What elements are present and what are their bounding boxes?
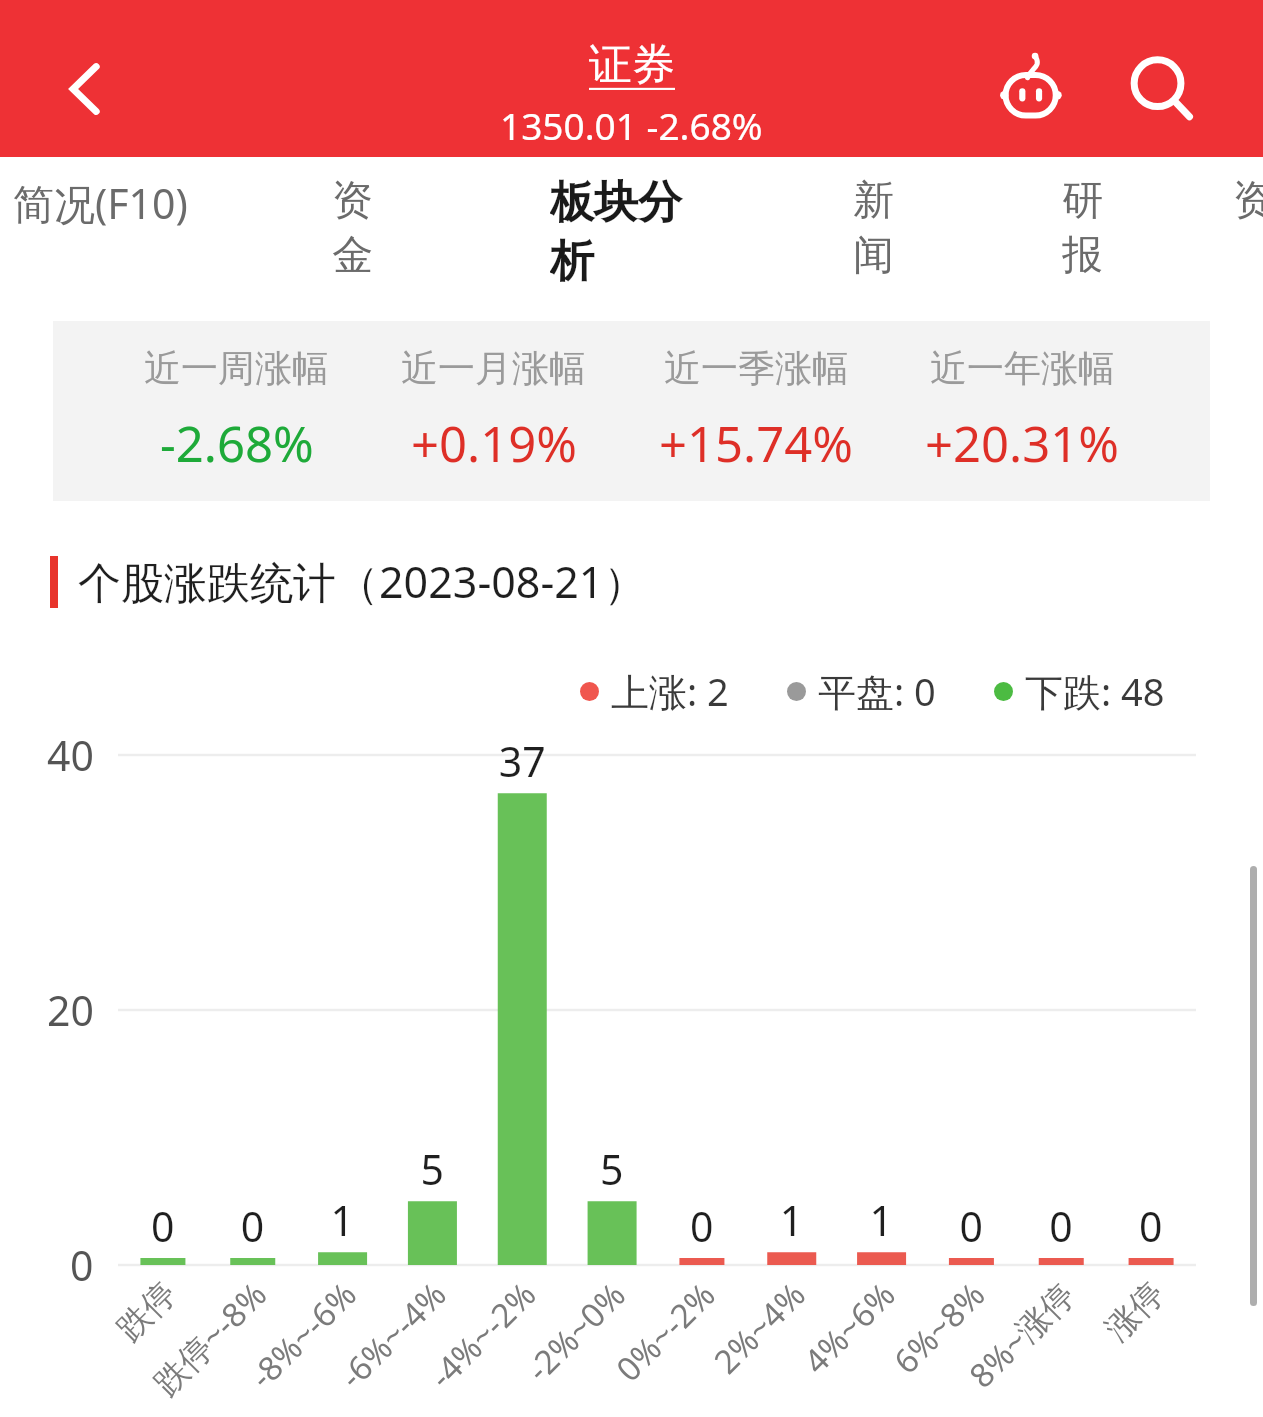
button[interactable]: 平盘: 0 — [787, 665, 936, 717]
button[interactable]: AI assistant — [988, 46, 1076, 134]
button[interactable]: Back — [50, 54, 120, 124]
button[interactable]: 板块分析 — [550, 157, 712, 287]
staticText: 上涨: 2 — [611, 665, 729, 717]
button[interactable]: 资 — [1233, 157, 1263, 287]
staticText: 1350.01 -2.68% — [500, 100, 763, 150]
staticText: 证券 — [589, 38, 675, 92]
staticText: 近一周涨幅 — [144, 345, 329, 392]
staticText: 近一季涨幅 — [664, 345, 849, 392]
staticText: 资金 — [332, 175, 407, 281]
button[interactable]: 简况(F10) — [0, 157, 232, 287]
button[interactable]: 新闻 — [853, 157, 928, 287]
button[interactable]: 下跌: 48 — [994, 665, 1165, 717]
button[interactable]: 上涨: 2 — [580, 665, 729, 717]
button[interactable]: Search — [1124, 52, 1202, 130]
staticText: 资 — [1233, 175, 1263, 227]
staticText: 下跌: 48 — [1025, 665, 1165, 717]
button[interactable]: 资金 — [332, 157, 407, 287]
staticText: 近一月涨幅 — [401, 345, 586, 392]
staticText: 新闻 — [853, 175, 928, 281]
staticText: 简况(F10) — [13, 175, 188, 231]
button[interactable]: 研报 — [1062, 157, 1137, 287]
staticText: +20.31% — [925, 410, 1119, 477]
staticText: 平盘: 0 — [818, 665, 936, 717]
staticText: 个股涨跌统计（2023-08-21） — [78, 552, 647, 611]
staticText: +0.19% — [411, 410, 577, 477]
staticText: 板块分析 — [550, 175, 712, 287]
staticText: +15.74% — [659, 410, 853, 477]
staticText: 研报 — [1062, 175, 1137, 281]
staticText: 近一年涨幅 — [930, 345, 1115, 392]
staticText: -2.68% — [160, 410, 314, 477]
